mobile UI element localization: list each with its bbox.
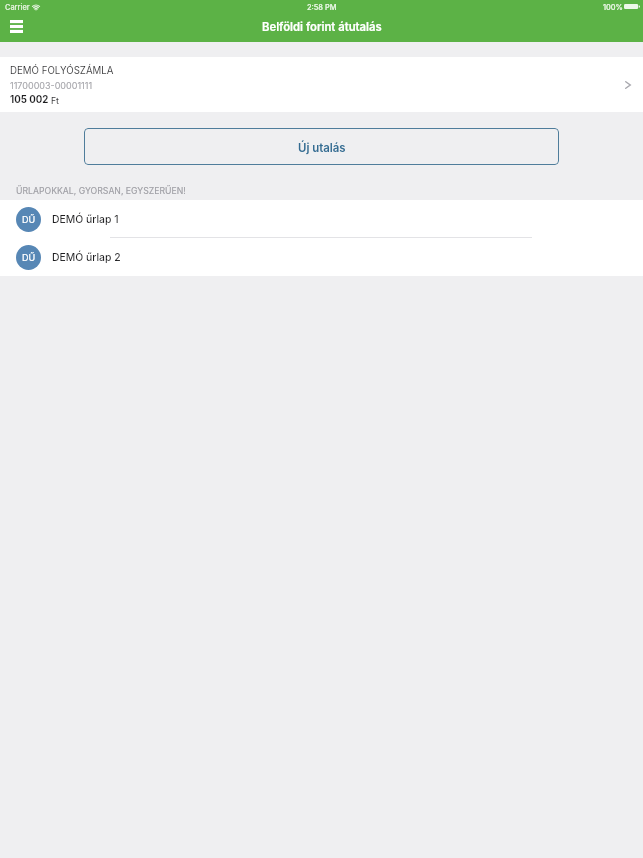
- staticText: 2:58 PM: [307, 3, 337, 12]
- button[interactable]: DŰ: [0, 200, 643, 238]
- staticText: 11700003-00001111: [10, 80, 93, 91]
- staticText: Új utalás: [298, 141, 346, 155]
- button[interactable]: DŰ: [0, 238, 643, 276]
- staticText: DŰ: [22, 252, 36, 263]
- staticText: DEMÓ FOLYÓSZÁMLA: [10, 65, 114, 77]
- staticText: 100%: [603, 3, 623, 12]
- staticText: DEMÓ űrlap 2: [52, 251, 121, 264]
- button[interactable]: DEMÓ FOLYÓSZÁMLA: [0, 57, 643, 112]
- staticText: Belföldi forint átutalás: [262, 20, 382, 34]
- staticText: ŰRLAPOKKAL, GYORSAN, EGYSZERŰEN!: [16, 186, 186, 197]
- staticText: Ft: [51, 96, 59, 106]
- staticText: Carrier: [5, 3, 30, 12]
- staticText: DEMÓ űrlap 1: [52, 213, 119, 226]
- button[interactable]: Új utalás: [84, 128, 559, 165]
- staticText: DŰ: [22, 214, 36, 225]
- staticText: 105 002: [10, 94, 49, 106]
- button[interactable]: Open navigation menu: [0, 14, 32, 42]
